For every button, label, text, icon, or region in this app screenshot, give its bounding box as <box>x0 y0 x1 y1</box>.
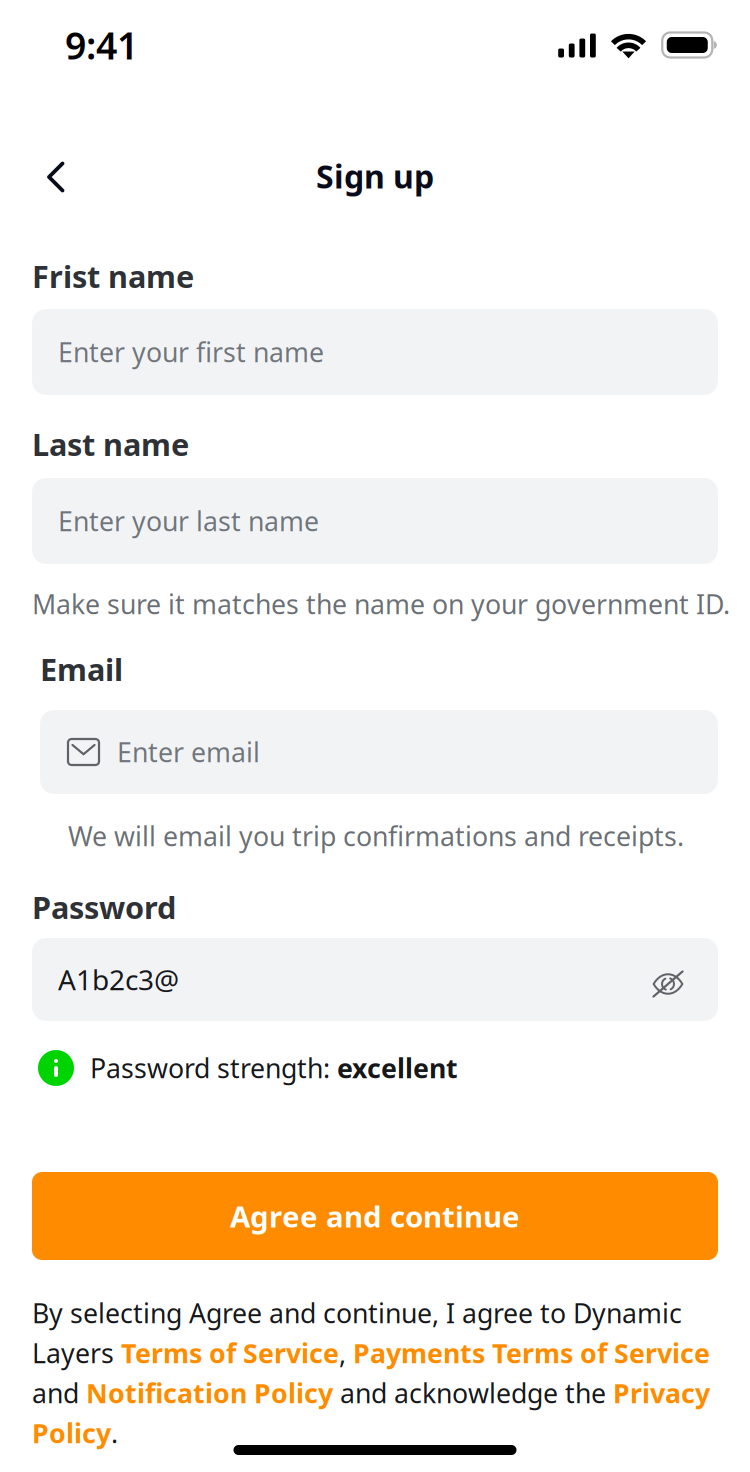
staticText: Frist name <box>32 256 194 296</box>
staticText: We will email you trip confirmations and… <box>68 818 684 854</box>
button[interactable]: Policy <box>32 1415 111 1451</box>
button[interactable]: Notification Policy <box>86 1375 333 1411</box>
staticText: Sign up <box>316 155 434 197</box>
button[interactable]: Show password <box>652 961 718 998</box>
staticText: Enter email <box>117 734 260 770</box>
staticText: Privacy <box>613 1375 710 1411</box>
staticText: Password <box>32 887 176 927</box>
button[interactable]: Terms of Service <box>121 1335 339 1371</box>
staticText: Terms of Service <box>121 1335 339 1371</box>
staticText: Payments Terms of Service <box>353 1335 710 1371</box>
staticText: and <box>32 1375 86 1411</box>
staticText: Notification Policy <box>86 1375 333 1411</box>
staticText: and acknowledge the <box>333 1375 613 1411</box>
staticText: Email <box>40 649 123 689</box>
staticText: Last name <box>32 424 189 464</box>
staticText: Make sure it matches the name on your go… <box>32 586 730 622</box>
button[interactable]: Back <box>32 149 80 203</box>
staticText: excellent <box>337 1050 458 1086</box>
staticText: , <box>339 1335 353 1371</box>
staticText: Password strength: <box>90 1050 337 1086</box>
staticText: Policy <box>32 1415 111 1451</box>
staticText: Layers <box>32 1335 121 1371</box>
staticText: . <box>111 1415 118 1451</box>
staticText: Enter your last name <box>58 503 319 539</box>
button[interactable]: Privacy <box>613 1375 710 1411</box>
button[interactable]: Payments Terms of Service <box>353 1335 710 1371</box>
staticText: Enter your first name <box>58 334 324 370</box>
staticText: Agree and continue <box>230 1196 520 1235</box>
staticText: By selecting Agree and continue, I agree… <box>32 1295 682 1331</box>
staticText: A1b2c3@ <box>58 961 179 998</box>
staticText: 9:41 <box>65 20 138 70</box>
button[interactable]: Agree and continue <box>32 1172 718 1260</box>
